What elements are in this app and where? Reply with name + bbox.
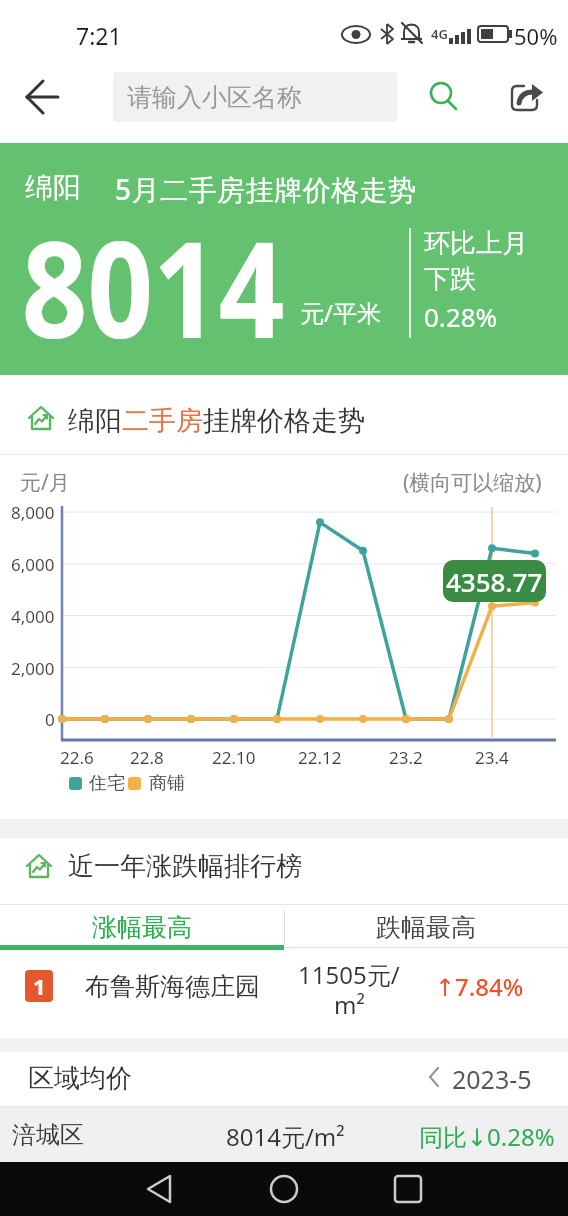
button[interactable] [368, 1162, 448, 1216]
staticText: ↑7.84% [435, 970, 524, 1002]
staticText: 7:21 [76, 20, 122, 48]
staticText: 8014元/m² [226, 1120, 345, 1150]
staticText: (横向可以缩放) [403, 468, 542, 494]
staticText: 4358.77 [446, 564, 543, 599]
staticText: 5月二手房挂牌价格走势 [115, 170, 417, 204]
staticText: 区域均价 [28, 1062, 132, 1092]
button[interactable] [244, 1162, 324, 1216]
staticText: 0.28% [424, 299, 498, 333]
staticText: 跌幅最高 [376, 912, 476, 943]
staticText: 元/月 [20, 468, 70, 494]
staticText: m² [334, 988, 365, 1016]
button[interactable] [420, 75, 465, 120]
button[interactable] [120, 1162, 200, 1216]
staticText: 50% [514, 21, 558, 47]
button[interactable]: 请输入小区名称 [113, 72, 397, 122]
button[interactable] [0, 143, 568, 375]
staticText: 8,000 [11, 501, 55, 524]
staticText: 住宅 [89, 772, 125, 795]
staticText: 22.8 [130, 746, 164, 769]
staticText: 绵阳 [25, 170, 81, 204]
staticText: 22.6 [60, 746, 94, 769]
staticText: 近一年涨跌幅排行榜 [68, 850, 302, 882]
staticText: 涨幅最高 [92, 912, 192, 943]
staticText: 8014 [22, 197, 285, 347]
button[interactable] [0, 1107, 568, 1162]
button[interactable] [15, 70, 70, 125]
button[interactable] [500, 75, 550, 120]
staticText: 6,000 [11, 553, 55, 576]
button[interactable] [0, 1052, 568, 1106]
staticText: 2023-5 [452, 1062, 532, 1092]
staticText: 同比↓0.28% [419, 1120, 555, 1150]
staticText: 请输入小区名称 [127, 82, 302, 113]
staticText: 下跌 [424, 263, 476, 295]
staticText: 11505元/ [298, 958, 400, 988]
staticText: 22.10 [212, 746, 256, 769]
button[interactable]: 涨幅最高 [0, 905, 284, 950]
staticText: 元/平米 [300, 296, 381, 326]
staticText: 23.2 [389, 746, 423, 769]
staticText: 23.4 [475, 746, 509, 769]
staticText: 环比上月 [424, 227, 528, 260]
staticText: 2,000 [11, 657, 55, 680]
staticText: 涪城区 [12, 1120, 84, 1150]
staticText: 4G [431, 25, 448, 43]
staticText: 商铺 [149, 772, 185, 795]
staticText: 布鲁斯海德庄园 [85, 971, 260, 1002]
staticText: 22.12 [298, 746, 342, 769]
staticText: 绵阳二手房挂牌价格走势 [68, 404, 365, 436]
staticText: 1 [33, 971, 46, 1001]
staticText: 4,000 [11, 605, 55, 628]
staticText: 0 [45, 708, 55, 731]
button[interactable] [0, 950, 568, 1038]
button[interactable]: 跌幅最高 [284, 905, 568, 950]
